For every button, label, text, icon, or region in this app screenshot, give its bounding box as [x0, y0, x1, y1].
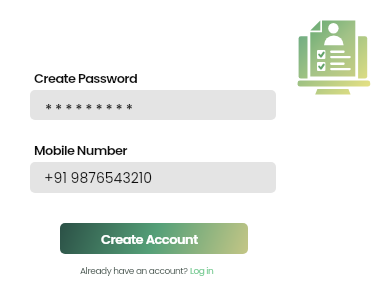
staticText: +91 9876543210 — [44, 168, 152, 188]
staticText: Mobile Number — [34, 141, 127, 159]
button[interactable]: +91 9876543210 — [30, 162, 276, 193]
staticText: * * * * * * * * * — [45, 100, 133, 120]
staticText: Already have an account? — [80, 265, 190, 278]
staticText: Create Password — [34, 69, 138, 87]
other: Sign up illustration — [294, 14, 374, 96]
button[interactable]: Log in — [190, 265, 214, 278]
button[interactable]: Create Account — [60, 223, 248, 254]
staticText: Create Account — [101, 230, 198, 248]
button[interactable]: * * * * * * * * * — [30, 90, 276, 120]
